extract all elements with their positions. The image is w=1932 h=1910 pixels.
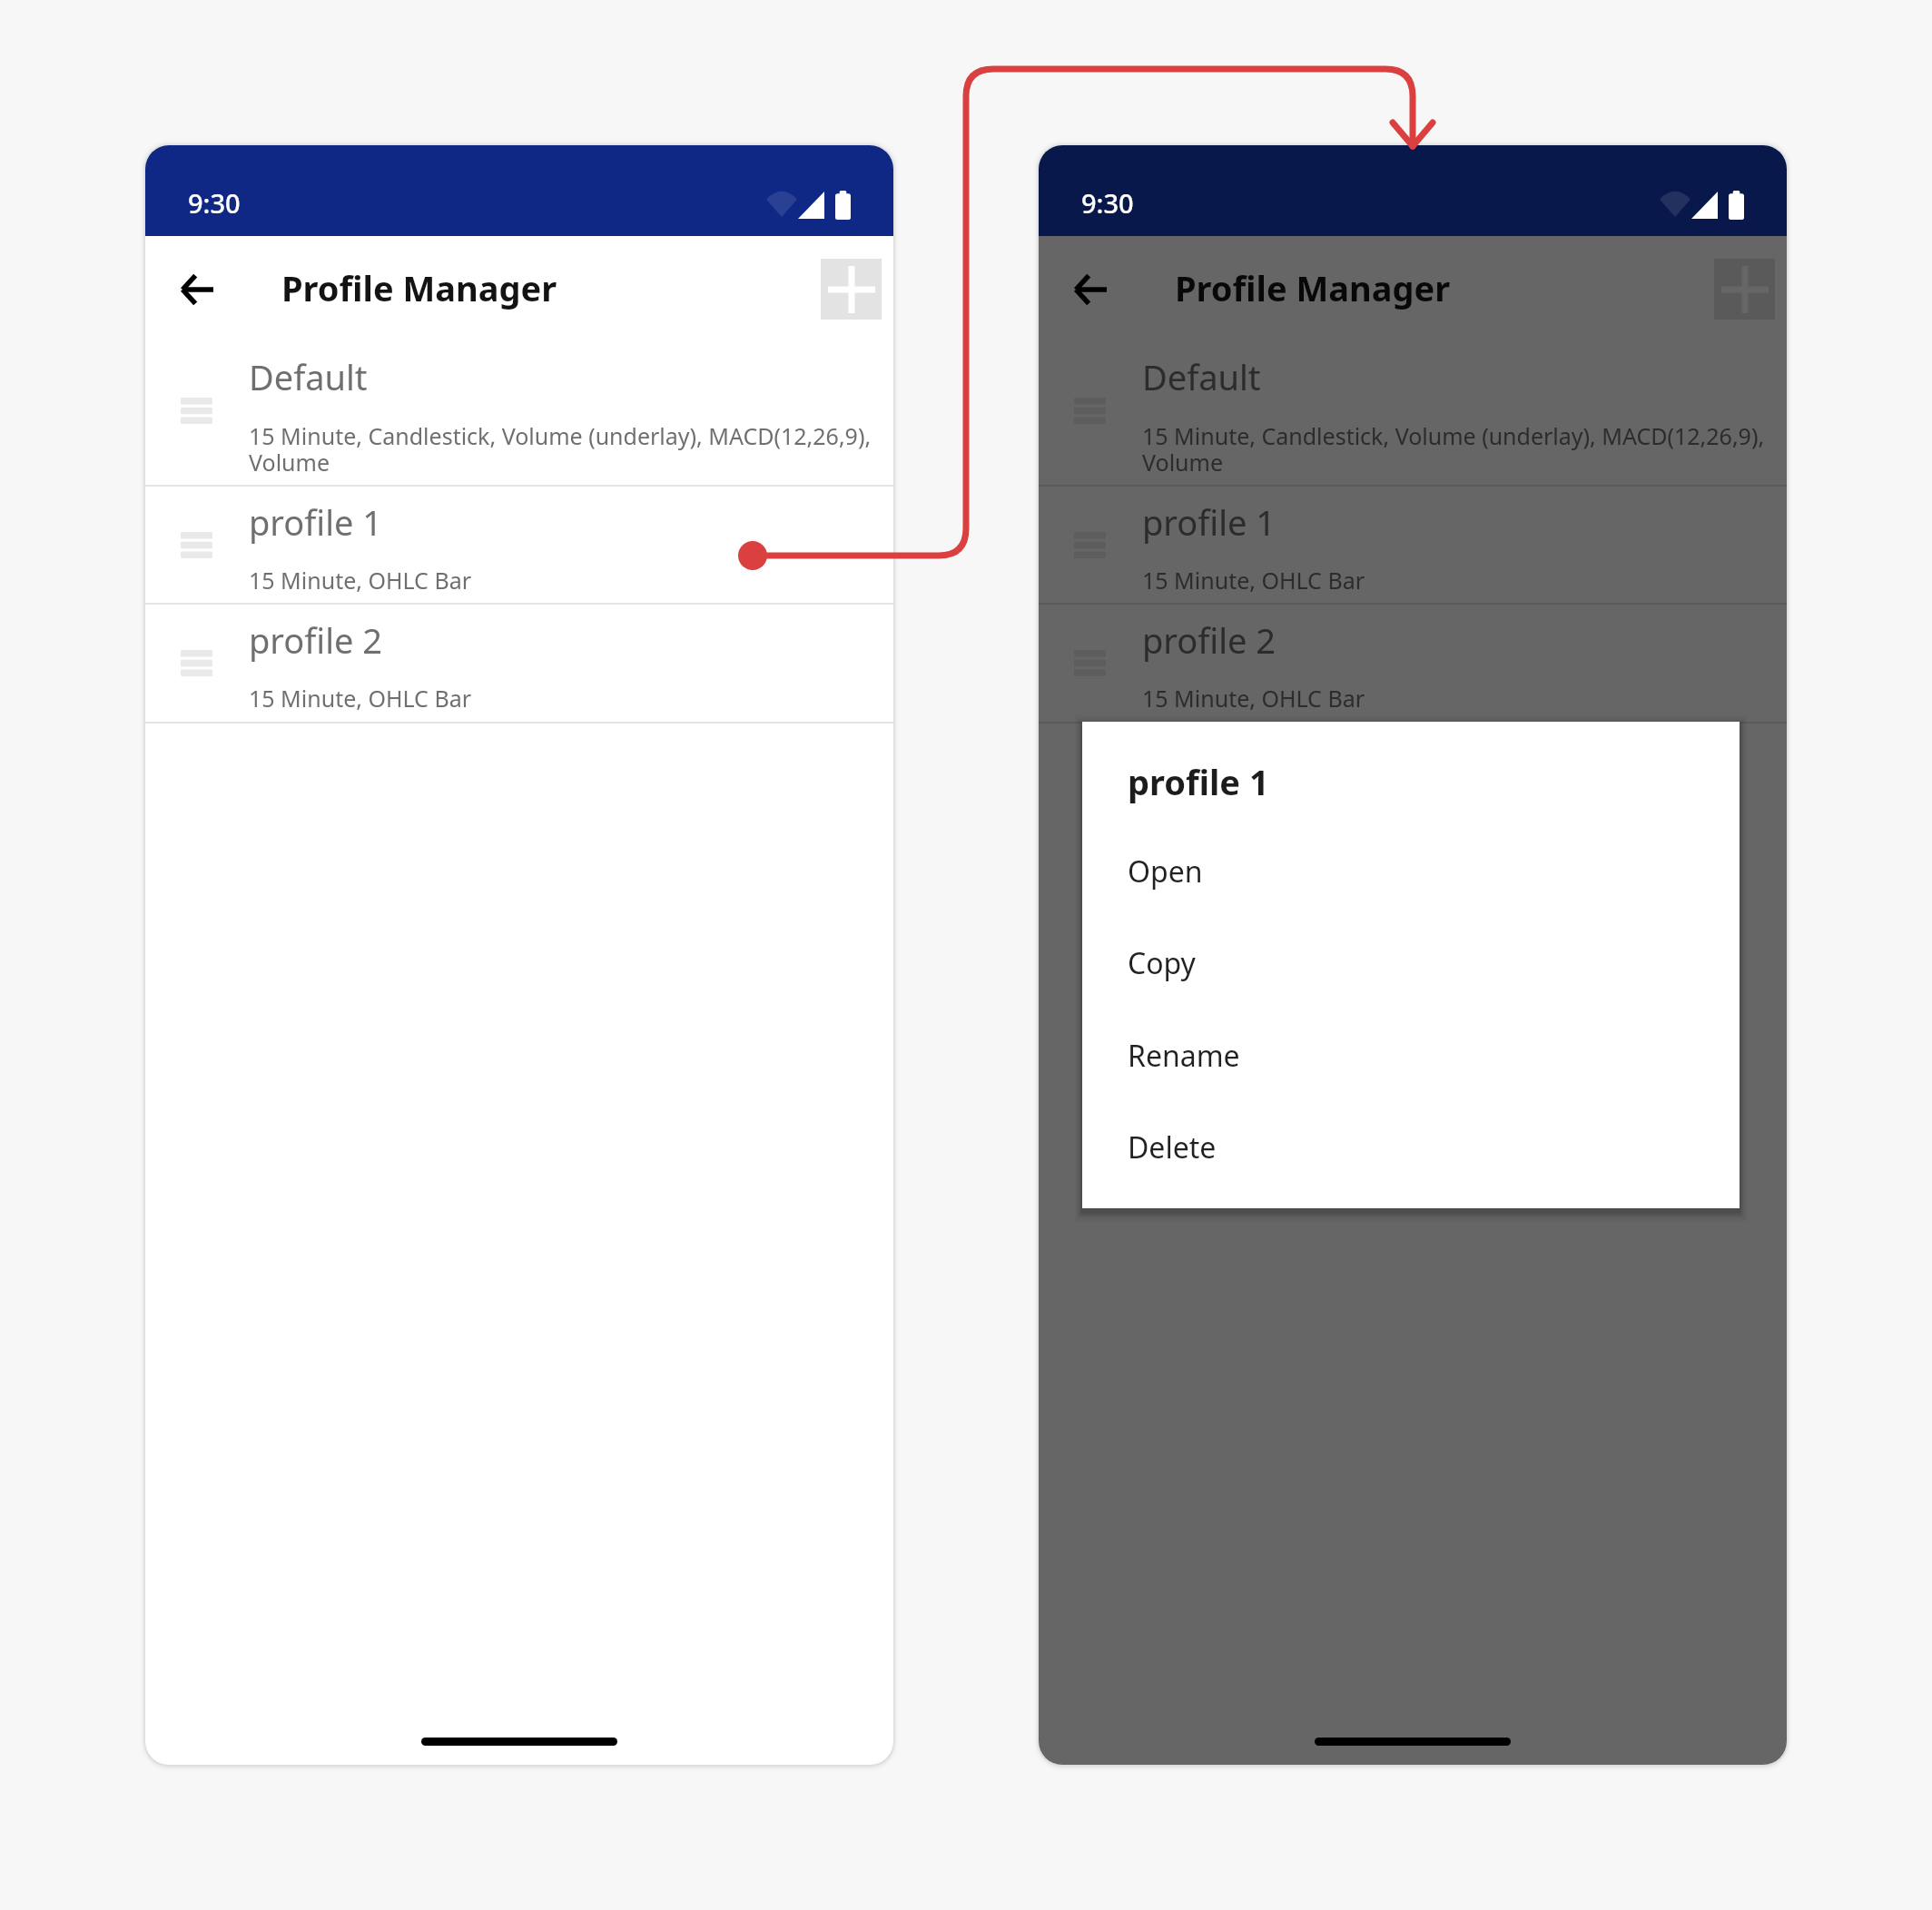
button[interactable]: Back [1057,256,1124,323]
staticText: Copy [1128,943,1196,983]
staticText: 15 Minute, Candlestick, Volume (underlay… [249,420,874,477]
button[interactable]: Open [1082,834,1740,909]
button[interactable]: profile 1 [145,487,893,603]
staticText: Rename [1128,1036,1240,1076]
staticText: profile 1 [249,498,383,546]
staticText: 15 Minute, OHLC Bar [249,683,874,714]
button[interactable]: Default [145,336,893,485]
staticText: 15 Minute, OHLC Bar [1142,683,1768,714]
button[interactable]: Back [163,256,231,323]
button[interactable]: Delete [1082,1110,1740,1185]
button[interactable]: profile 2 [145,605,893,722]
staticText: Delete [1128,1127,1217,1167]
staticText: profile 1 [1128,758,1269,805]
staticText: profile 2 [249,616,383,664]
button[interactable]: Copy [1082,926,1740,1000]
button[interactable]: Add profile [821,259,882,320]
button[interactable]: profile 2 [1039,605,1787,722]
button[interactable]: profile 1 [1039,487,1787,603]
staticText: Open [1128,852,1203,891]
button[interactable]: Default [1039,336,1787,485]
button[interactable]: Add profile [1714,259,1775,320]
staticText: Profile Manager [1175,264,1451,311]
button[interactable]: Rename [1082,1019,1740,1093]
staticText: Default [1142,353,1261,400]
staticText: profile 1 [1142,498,1276,546]
staticText: Default [249,353,368,400]
staticText: Profile Manager [281,264,557,311]
staticText: 15 Minute, Candlestick, Volume (underlay… [1142,420,1768,477]
staticText: 9:30 [188,185,241,221]
staticText: 15 Minute, OHLC Bar [1142,565,1768,596]
staticText: 9:30 [1081,185,1134,221]
staticText: profile 2 [1142,616,1276,664]
staticText: 15 Minute, OHLC Bar [249,565,874,596]
